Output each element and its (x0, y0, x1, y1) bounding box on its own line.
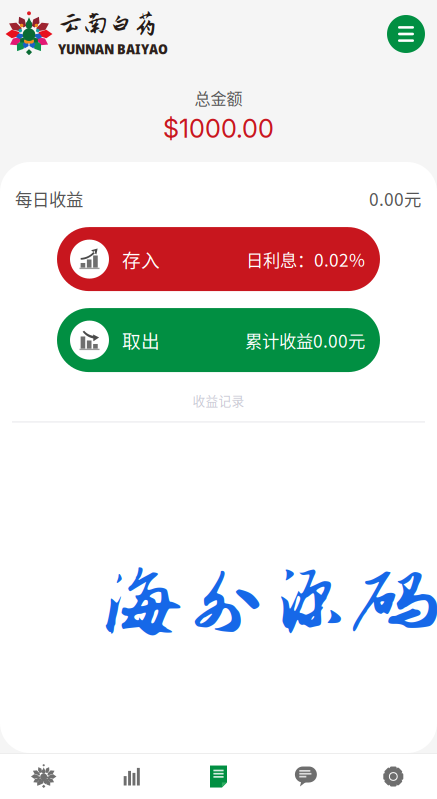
staticText: 云南白药 (58, 9, 158, 37)
staticText: 日利息：0.02% (246, 246, 365, 272)
staticText: YUNNAN BAIYAO (58, 38, 168, 58)
button[interactable]: Menu (380, 8, 432, 60)
button[interactable]: 存入 (57, 227, 380, 291)
button[interactable]: Settings (350, 754, 437, 799)
staticText: 0.00元 (369, 186, 421, 211)
button[interactable]: Records (175, 754, 262, 799)
button[interactable]: Statistics (87, 754, 175, 799)
staticText: 存入 (122, 246, 160, 273)
button[interactable]: Messages (262, 754, 350, 799)
button[interactable]: Home (0, 754, 87, 799)
staticText: 收益记录 (192, 391, 244, 409)
staticText: 总金额 (194, 86, 242, 109)
staticText: 每日收益 (15, 186, 83, 211)
staticText: $1000.00 (163, 113, 274, 144)
staticText: 海外源码 (101, 556, 437, 650)
button[interactable]: 取出 (57, 308, 380, 372)
staticText: 取出 (122, 327, 160, 354)
staticText: 累计收益0.00元 (245, 327, 365, 353)
